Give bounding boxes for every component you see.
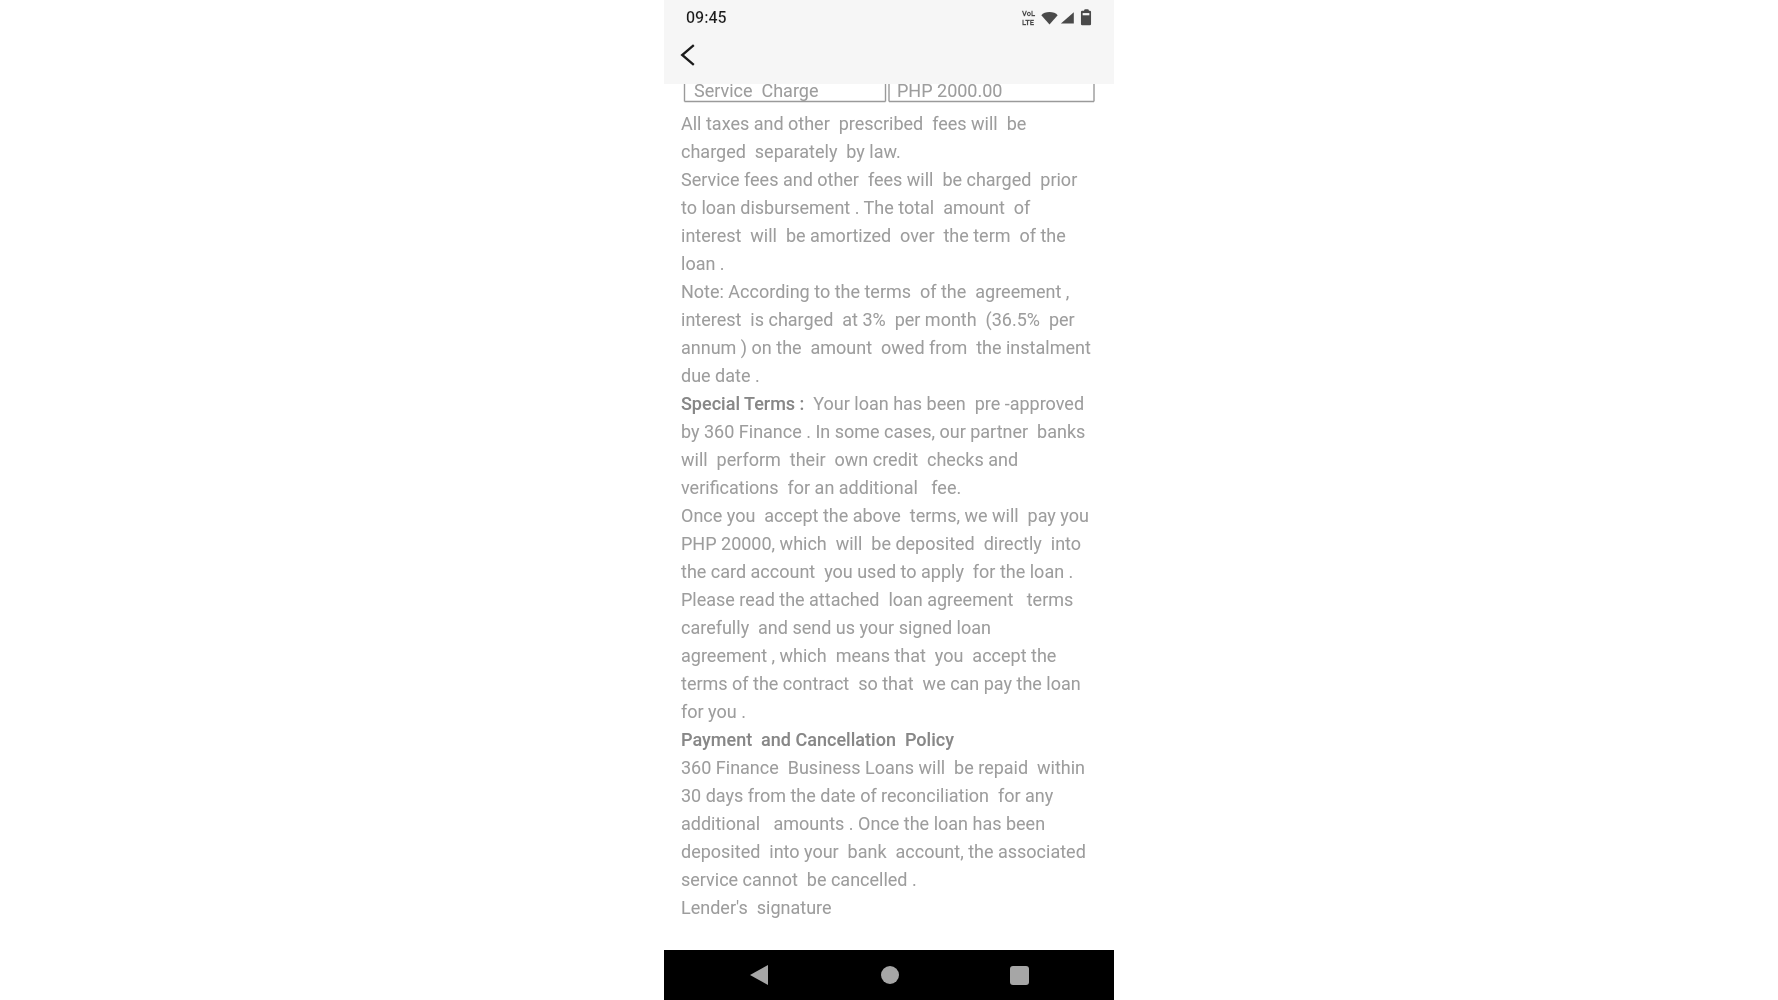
button[interactable]: Recents	[989, 950, 1049, 1000]
staticText: 09:45	[686, 8, 727, 27]
staticText: will perform their own credit checks and	[681, 449, 1019, 470]
staticText: VoL	[1022, 9, 1036, 18]
staticText: by 360 Finance . In some cases, our part…	[681, 421, 1086, 442]
staticText: Special Terms : Your loan has been pre -…	[681, 393, 1085, 414]
staticText: deposited into your bank account, the as…	[681, 841, 1086, 862]
staticText: service cannot be cancelled .	[681, 869, 917, 890]
staticText: Please read the attached loan agreement …	[681, 589, 1074, 610]
staticText: All taxes and other prescribed fees will…	[681, 113, 1027, 134]
staticText: the card account you used to apply for t…	[681, 561, 1074, 582]
staticText: terms of the contract so that we can pay…	[681, 673, 1081, 694]
staticText: carefully and send us your signed loan	[681, 617, 991, 638]
staticText: 30 days from the date of reconciliation …	[681, 785, 1054, 806]
staticText: Payment and Cancellation Policy	[681, 729, 954, 750]
button[interactable]: Navigate back	[729, 950, 789, 1000]
staticText: to loan disbursement . The total amount …	[681, 197, 1031, 218]
staticText: charged separately by law.	[681, 141, 901, 162]
staticText: PHP 20000, which will be deposited direc…	[681, 533, 1082, 554]
staticText: agreement , which means that you accept …	[681, 645, 1057, 666]
staticText: loan .	[681, 253, 725, 274]
button[interactable]: Back	[664, 30, 712, 80]
staticText: additional amounts . Once the loan has b…	[681, 813, 1046, 834]
staticText: Note: According to the terms of the agre…	[681, 281, 1070, 302]
button[interactable]: Home	[860, 950, 920, 1000]
staticText: Service Charge	[694, 80, 819, 101]
staticText: Once you accept the above terms, we will…	[681, 505, 1089, 526]
staticText: Service fees and other fees will be char…	[681, 169, 1078, 190]
staticText: 360 Finance Business Loans will be repai…	[681, 757, 1086, 778]
staticText: verifications for an additional fee.	[681, 477, 962, 498]
staticText: due date .	[681, 365, 760, 386]
staticText: interest will be amortized over the term…	[681, 225, 1066, 246]
staticText: LTE	[1022, 18, 1035, 26]
staticText: PHP 2000.00	[897, 80, 1003, 101]
staticText: interest is charged at 3% per month (36.…	[681, 309, 1075, 330]
staticText: annum ) on the amount owed from the inst…	[681, 337, 1091, 358]
staticText: Lender's signature	[681, 897, 832, 918]
staticText: for you .	[681, 701, 746, 722]
